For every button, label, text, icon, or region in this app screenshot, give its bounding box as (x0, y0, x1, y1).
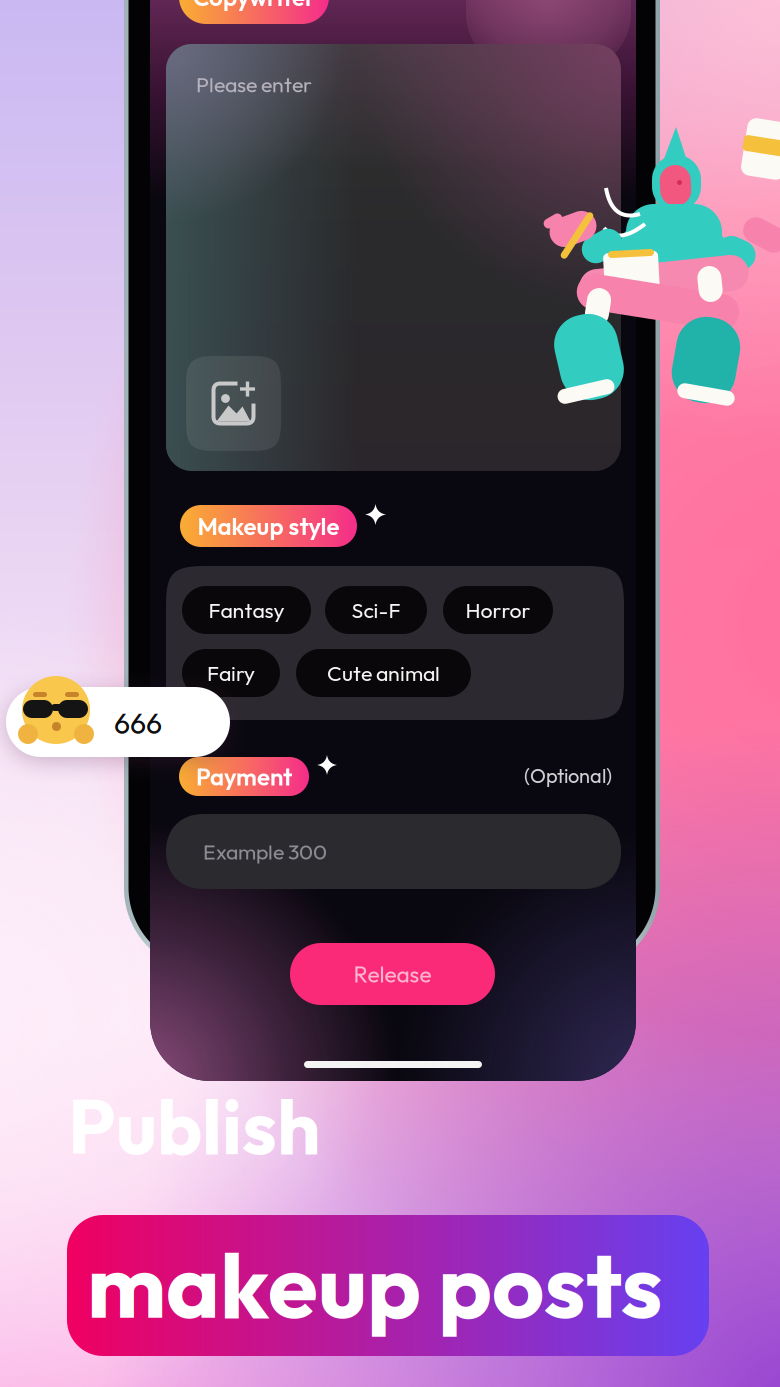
staticText: makeup posts (87, 1227, 663, 1341)
staticText: Sci-F (351, 597, 400, 623)
staticText: Cute animal (327, 660, 440, 686)
staticText: Copywriter (193, 0, 315, 12)
button[interactable]: Release (290, 943, 495, 1005)
staticText: Fantasy (208, 597, 284, 623)
staticText: Makeup style (197, 511, 339, 541)
staticText: Release (353, 960, 431, 988)
button[interactable]: Sci-F (325, 586, 427, 634)
staticText: Fairy (207, 660, 255, 686)
button[interactable]: Makeup style (180, 505, 357, 547)
button[interactable]: Payment (179, 757, 309, 796)
button[interactable]: Horror (443, 586, 553, 634)
button[interactable]: Add image (186, 356, 281, 451)
button[interactable]: Please enter (166, 44, 621, 471)
staticText: Please enter (196, 71, 312, 98)
button[interactable]: Example 300 (166, 814, 621, 889)
staticText: Example 300 (203, 838, 327, 865)
staticText: Horror (465, 597, 530, 623)
button[interactable]: Fantasy (182, 586, 311, 634)
staticText: 666 (114, 705, 162, 741)
button[interactable]: Fairy (182, 649, 280, 697)
staticText: (Optional) (524, 763, 612, 788)
button[interactable]: Copywriter (179, 0, 329, 24)
staticText: Payment (196, 761, 292, 792)
staticText: Publish (68, 1078, 320, 1174)
button[interactable]: Cute animal (296, 649, 471, 697)
